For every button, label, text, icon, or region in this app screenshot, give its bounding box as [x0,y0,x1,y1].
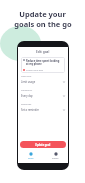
staticText: Frequency [21,89,33,92]
staticText: Set a reminder [21,108,39,112]
staticText: Reduce time spent looking [26,59,60,62]
staticText: Every day [21,94,33,98]
button[interactable]: Goals [25,151,37,161]
button[interactable]: Reduce time spent looking [21,57,65,73]
button[interactable]: Goal type [21,75,65,89]
staticText: Edit goal [36,50,50,54]
staticText: Goals [28,157,34,160]
staticText: Limit usage [21,80,36,84]
button[interactable]: Profile [49,151,62,161]
staticText: Update goal [35,143,51,146]
staticText: Goal type [21,75,32,78]
staticText: goals on the go [14,19,72,29]
staticText: Screen time goal [26,69,44,71]
staticText: Profile [52,157,59,160]
staticText: Update your [19,9,66,19]
button[interactable]: Reminder [21,103,65,117]
staticText: at my phone [26,62,42,65]
button[interactable]: Frequency [21,89,65,103]
staticText: Reminder [21,103,32,106]
button[interactable]: Update goal [20,141,66,148]
